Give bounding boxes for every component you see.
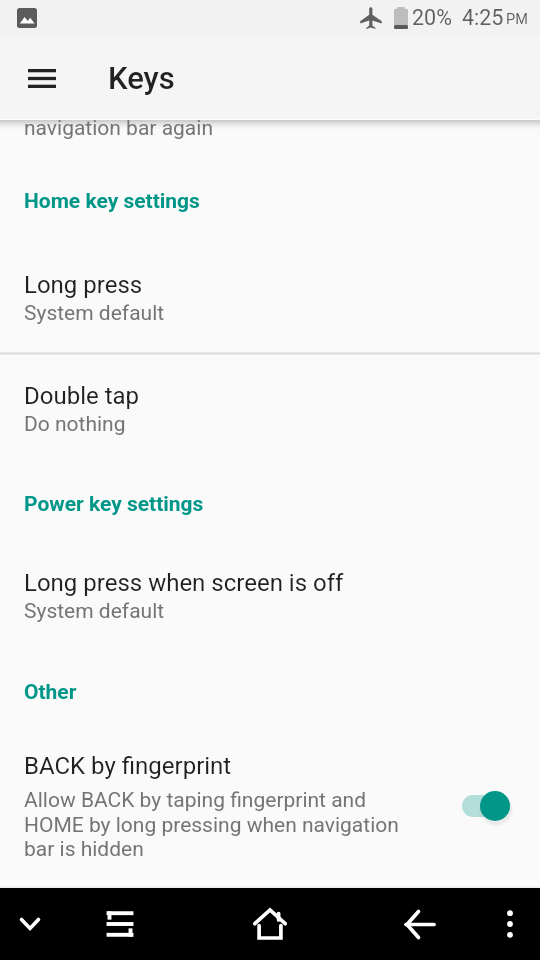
other: Airplane mode on	[360, 6, 382, 29]
staticText: Home key settings	[24, 189, 200, 214]
button[interactable]: Back	[360, 888, 480, 960]
staticText: Other	[24, 680, 77, 705]
staticText: Allow BACK by taping fingerprint and HOM…	[24, 788, 424, 861]
staticText: System default	[24, 599, 165, 624]
staticText: Long press when screen is off	[24, 569, 344, 597]
staticText: Keys	[108, 60, 175, 96]
button[interactable]: BACK by fingerprint	[0, 744, 540, 894]
button[interactable]: More options	[480, 888, 540, 960]
staticText: Double tap	[24, 382, 140, 410]
button[interactable]: Navigation menu	[18, 54, 66, 102]
staticText: System default	[24, 301, 165, 326]
staticText: PM	[506, 11, 528, 28]
staticText: 20%	[412, 5, 452, 30]
button[interactable]: Home	[210, 888, 330, 960]
button[interactable]: Hide navigation bar	[0, 888, 60, 960]
staticText: Power key settings	[24, 492, 204, 517]
button[interactable]: Double tap	[0, 382, 540, 443]
other: Screenshot captured	[17, 8, 37, 28]
button[interactable]: Long press when screen is off	[0, 569, 540, 630]
button[interactable]: Long press	[0, 271, 540, 332]
staticText: Do nothing	[24, 412, 126, 437]
button[interactable]: BACK by fingerprint toggle	[456, 782, 522, 830]
button[interactable]: Recent apps	[60, 888, 180, 960]
staticText: Long press	[24, 271, 143, 299]
staticText: navigation bar again	[24, 116, 213, 141]
staticText: BACK by fingerprint	[24, 752, 232, 780]
staticText: 4:25	[462, 5, 504, 30]
